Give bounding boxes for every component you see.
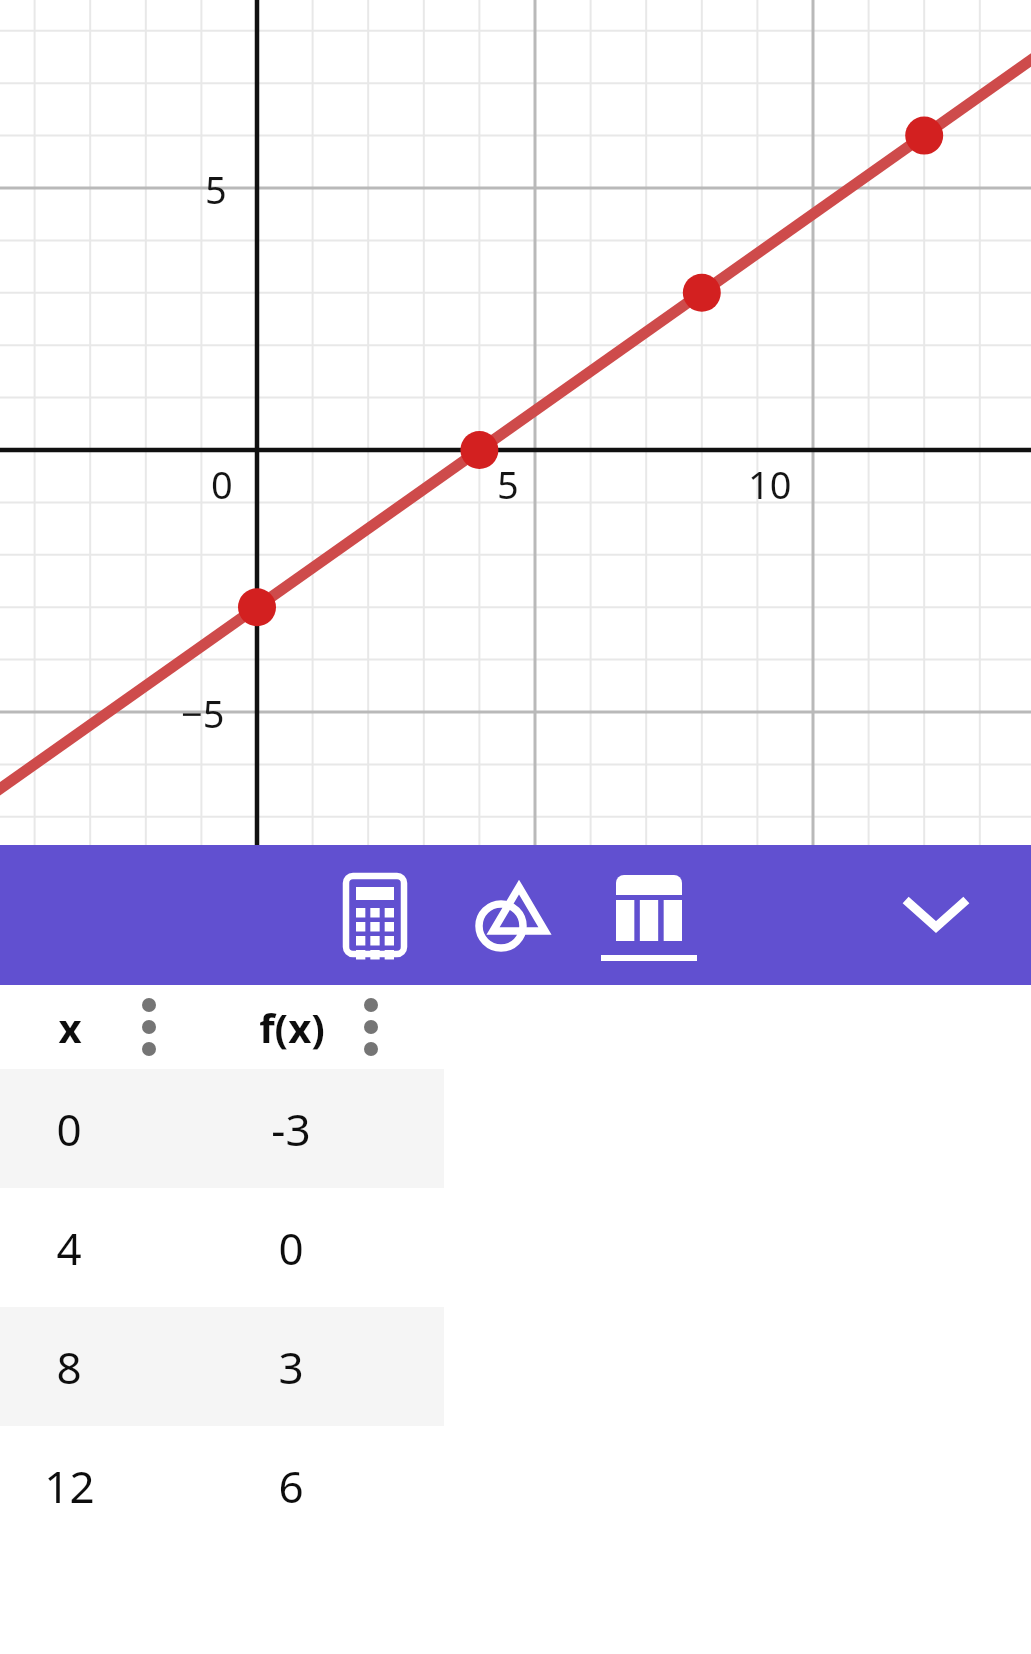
staticText: 10 bbox=[748, 458, 792, 510]
button[interactable]: f(x) bbox=[222, 985, 444, 1069]
other: Column options bbox=[140, 985, 222, 1069]
staticText: f(x) bbox=[259, 1000, 325, 1054]
staticText: −5 bbox=[181, 687, 225, 739]
staticText: 4 bbox=[56, 1218, 82, 1278]
other: Column options bbox=[362, 985, 444, 1069]
staticText: 3 bbox=[278, 1337, 304, 1397]
button[interactable]: x bbox=[0, 985, 222, 1069]
staticText: x bbox=[58, 1000, 82, 1054]
staticText: 0 bbox=[211, 458, 233, 510]
staticText: 0 bbox=[56, 1099, 82, 1159]
button[interactable]: 8 bbox=[0, 1307, 1031, 1426]
staticText: 5 bbox=[497, 458, 519, 510]
button[interactable]: 4 bbox=[0, 1188, 1031, 1307]
button[interactable]: Table bbox=[594, 875, 704, 975]
button[interactable]: Calculator bbox=[320, 875, 430, 955]
staticText: 8 bbox=[56, 1337, 82, 1397]
button[interactable]: 0 bbox=[0, 1069, 1031, 1188]
button[interactable]: Collapse bbox=[886, 875, 986, 955]
staticText: -3 bbox=[271, 1099, 311, 1159]
staticText: 5 bbox=[205, 163, 227, 215]
button[interactable]: 12 bbox=[0, 1426, 1031, 1545]
staticText: 6 bbox=[278, 1456, 304, 1516]
button[interactable]: Geometry bbox=[457, 875, 567, 955]
staticText: 12 bbox=[44, 1456, 95, 1516]
staticText: 0 bbox=[278, 1218, 304, 1278]
